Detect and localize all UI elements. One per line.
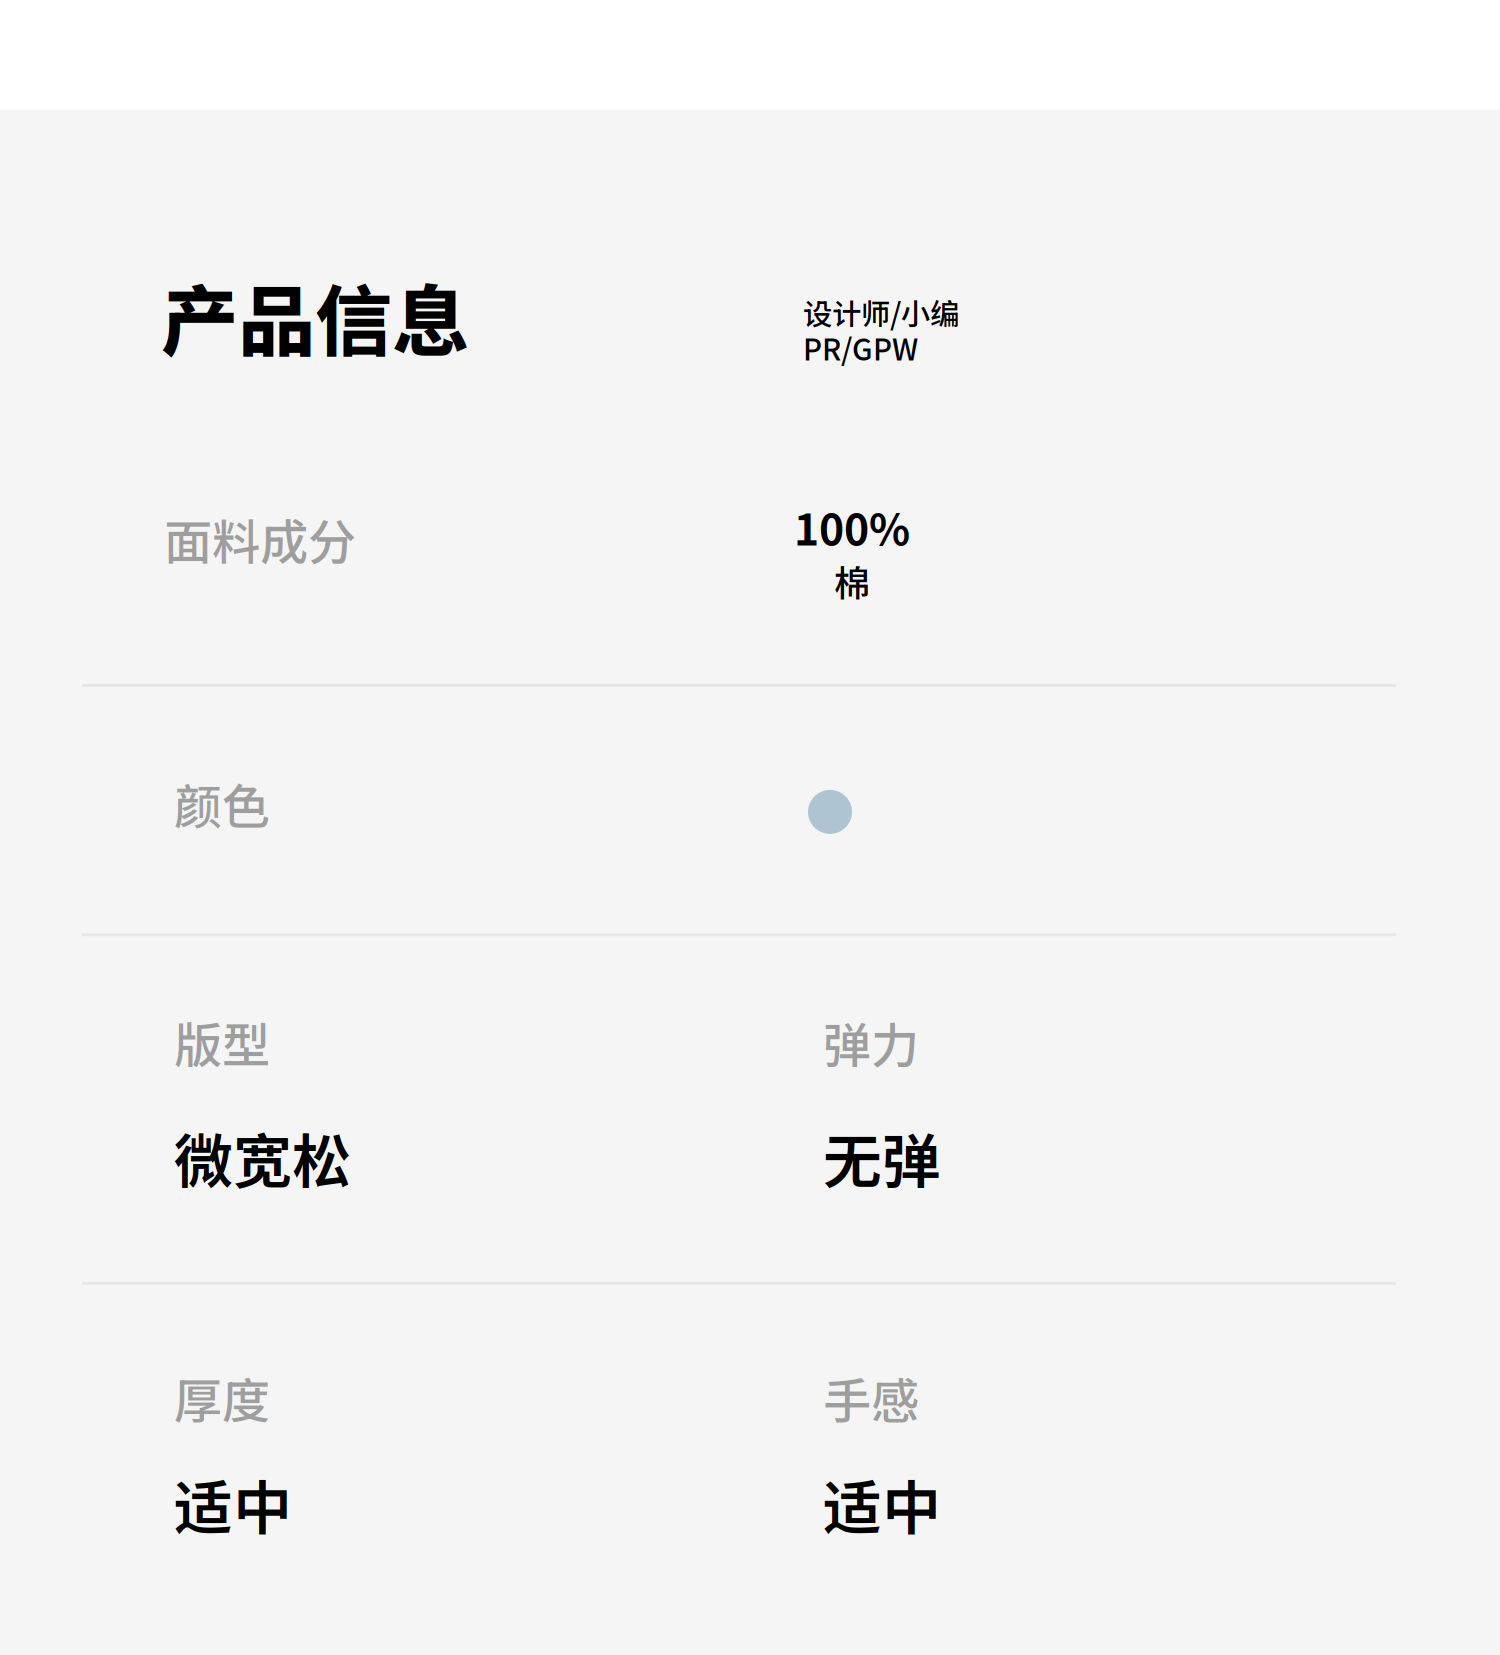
staticText: 微宽松 (174, 1115, 351, 1200)
staticText: 面料成分 (164, 504, 356, 573)
staticText: 颜色 (174, 769, 270, 838)
staticText: PR/GPW (803, 326, 918, 369)
staticText: 产品信息 (161, 260, 469, 372)
staticText: 适中 (174, 1461, 292, 1546)
staticText: 厚度 (174, 1363, 270, 1432)
staticText: 无弹 (823, 1115, 941, 1200)
staticText: 手感 (823, 1363, 919, 1432)
staticText: 适中 (823, 1461, 941, 1546)
staticText: 棉 (834, 555, 870, 607)
staticText: 100% (794, 496, 910, 558)
button[interactable]: 颜色 浅蓝 (808, 790, 852, 834)
staticText: 版型 (174, 1007, 270, 1077)
staticText: 弹力 (823, 1007, 919, 1077)
staticText: 设计师/小编 (803, 291, 959, 333)
